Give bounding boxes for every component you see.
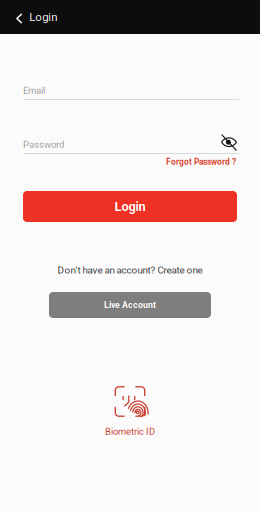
button[interactable]: Back to Login (0, 0, 69, 34)
staticText: Login (29, 10, 57, 24)
button[interactable]: Forgot Password ? (23, 157, 236, 167)
staticText: Forgot Password ? (166, 157, 236, 167)
staticText: Don't have an account? Create one (57, 264, 202, 276)
staticText: Email (23, 85, 45, 96)
staticText: Biometric ID (105, 426, 155, 437)
button[interactable]: Show password (217, 130, 241, 154)
staticText: Login (114, 199, 145, 214)
button[interactable]: Biometric ID (80, 386, 180, 437)
button[interactable]: Login (23, 191, 237, 222)
button[interactable]: Live Account (49, 292, 211, 318)
staticText: Password (23, 139, 64, 150)
staticText: Live Account (104, 300, 156, 310)
